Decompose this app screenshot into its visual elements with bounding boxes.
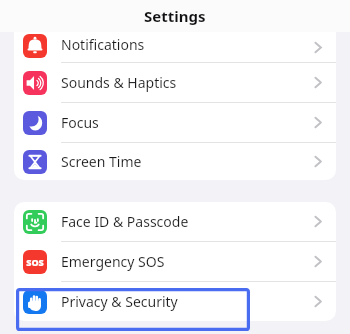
button[interactable]: Privacy & Security <box>14 282 336 321</box>
button[interactable]: Notifications <box>14 32 336 62</box>
button[interactable]: Focus <box>14 103 336 142</box>
staticText: SOS <box>26 256 44 268</box>
staticText: Focus <box>61 113 99 132</box>
staticText: Sounds & Haptics <box>61 73 177 92</box>
staticText: Screen Time <box>61 152 142 171</box>
staticText: Privacy & Security <box>61 292 178 311</box>
staticText: Face ID & Passcode <box>61 212 189 231</box>
staticText: Notifications <box>61 35 145 54</box>
staticText: Settings <box>144 6 206 26</box>
button[interactable]: Face ID & Passcode <box>14 202 336 241</box>
button[interactable]: Screen Time <box>14 143 336 180</box>
staticText: Emergency SOS <box>61 252 165 271</box>
button[interactable]: SOS <box>14 242 336 281</box>
button[interactable]: Sounds & Haptics <box>14 63 336 102</box>
